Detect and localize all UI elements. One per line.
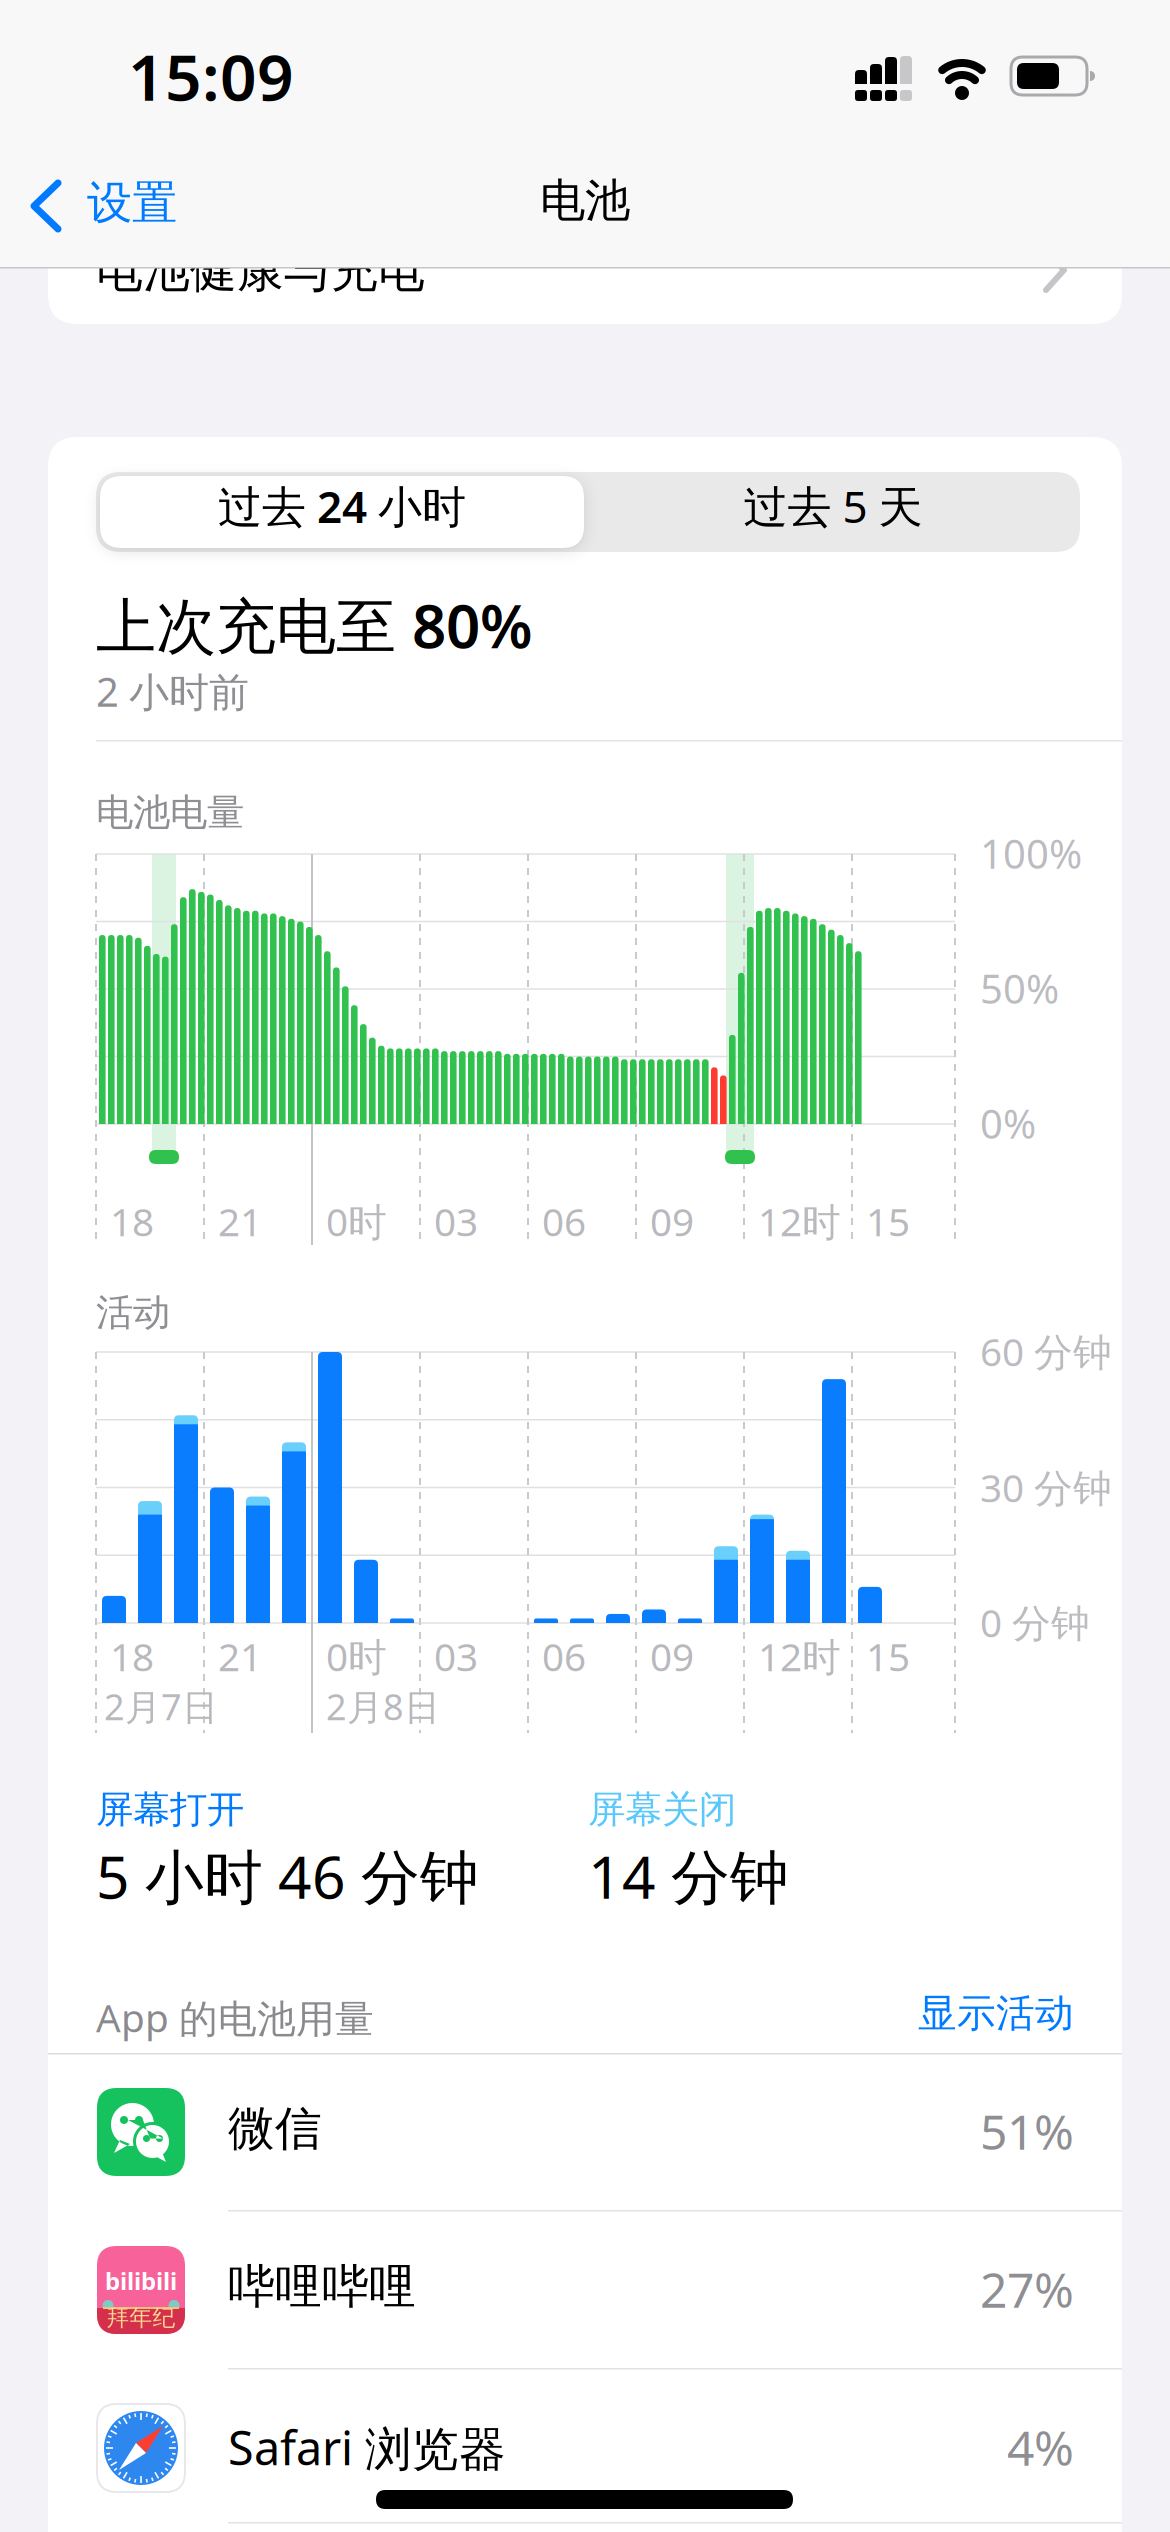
button[interactable]: 过去 24 小时 — [0, 0, 1170, 2532]
staticText: 4% — [1007, 2415, 1074, 2479]
staticText: 15 — [866, 1631, 910, 1682]
staticText: 21 — [218, 1631, 262, 1682]
staticText: App 的电池用量 — [96, 1992, 374, 2043]
staticText: 哔哩哔哩 — [228, 2258, 416, 2315]
staticText: 微信 — [228, 2100, 322, 2157]
staticText: 上次充电至 80% — [96, 585, 533, 665]
staticText: 50% — [980, 962, 1059, 1015]
button[interactable]: bilibili — [0, 0, 1170, 2532]
button[interactable]: 过去 5 天 — [0, 0, 1170, 2532]
staticText: 0时 — [326, 1196, 387, 1247]
staticText: 电池 — [540, 173, 630, 229]
staticText: 100% — [980, 827, 1082, 880]
staticText: 0 分钟 — [980, 1597, 1090, 1648]
staticText: 屏幕打开 — [96, 1786, 244, 1832]
staticText: 屏幕关闭 — [588, 1786, 736, 1832]
staticText: 27% — [980, 2257, 1074, 2321]
staticText: 18 — [110, 1196, 154, 1247]
staticText: 活动 — [96, 1289, 170, 1335]
staticText: 03 — [434, 1196, 478, 1247]
staticText: 拜年纪 — [106, 2304, 175, 2332]
staticText: 12时 — [758, 1631, 841, 1682]
staticText: 09 — [650, 1631, 694, 1682]
staticText: Safari 浏览器 — [228, 2416, 506, 2478]
staticText: 0时 — [326, 1631, 387, 1682]
staticText: 06 — [542, 1196, 586, 1247]
staticText: bilibili — [105, 2265, 177, 2297]
staticText: 15 — [866, 1196, 910, 1247]
button[interactable]: 微信 — [0, 0, 1170, 2532]
button[interactable]: Safari 浏览器 — [0, 0, 1170, 2532]
staticText: 51% — [980, 2099, 1074, 2163]
staticText: 30 分钟 — [980, 1462, 1112, 1513]
staticText: 18 — [110, 1631, 154, 1682]
button[interactable]: 显示活动 — [0, 0, 1170, 2532]
staticText: 设置 — [87, 175, 177, 231]
staticText: 14 分钟 — [588, 1837, 789, 1915]
staticText: 03 — [434, 1631, 478, 1682]
staticText: 显示活动 — [918, 1990, 1074, 2037]
staticText: 2 小时前 — [96, 665, 249, 718]
staticText: 09 — [650, 1196, 694, 1247]
staticText: 电池健康与充电 — [96, 242, 425, 299]
staticText: 过去 24 小时 — [218, 477, 466, 535]
button[interactable]: 电池健康与充电 — [0, 0, 1170, 2532]
staticText: 21 — [218, 1196, 262, 1247]
staticText: 15:09 — [128, 33, 294, 118]
staticText: 60 分钟 — [980, 1326, 1112, 1377]
button[interactable]: 设置 — [0, 0, 1170, 2532]
staticText: 0% — [980, 1097, 1036, 1150]
staticText: 2月7日 — [104, 1682, 218, 1730]
staticText: 2月8日 — [326, 1682, 440, 1730]
staticText: 过去 5 天 — [743, 477, 922, 535]
staticText: 06 — [542, 1631, 586, 1682]
staticText: 电池电量 — [96, 789, 244, 835]
staticText: 12时 — [758, 1196, 841, 1247]
staticText: 5 小时 46 分钟 — [96, 1837, 479, 1915]
